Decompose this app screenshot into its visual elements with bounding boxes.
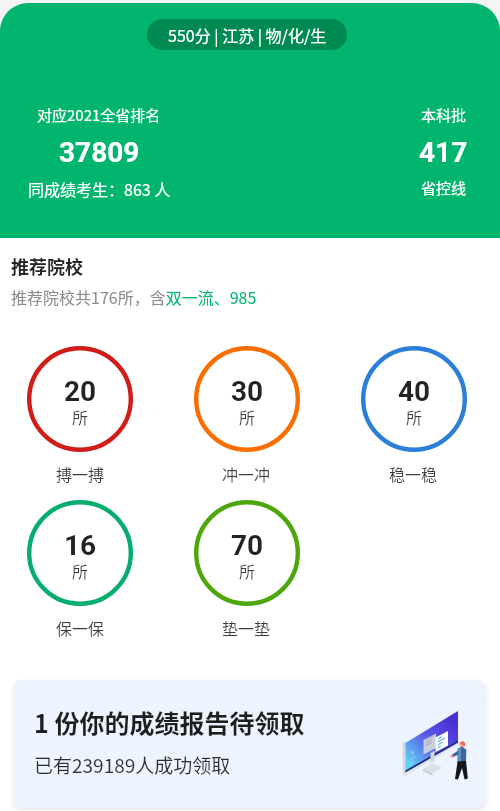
staticText: 省控线 — [421, 177, 467, 199]
staticText: 保一保 — [56, 616, 105, 639]
staticText: 所 — [239, 559, 256, 582]
button[interactable]: 70 — [163, 500, 330, 639]
staticText: 所 — [239, 405, 256, 428]
staticText: 30 — [231, 375, 264, 408]
staticText: 搏一搏 — [56, 462, 105, 485]
button[interactable]: 550分 | 江苏 | 物/化/生 — [147, 19, 347, 50]
staticText: 已有239189人成功领取 — [34, 751, 231, 779]
staticText: 16 — [64, 529, 97, 562]
staticText: 稳一稳 — [389, 462, 438, 485]
staticText: 对应2021全省排名 — [37, 104, 161, 126]
button[interactable]: 1 份你的成绩报告待领取 — [13, 680, 484, 808]
button[interactable]: 30 — [163, 346, 330, 485]
staticText: 推荐院校共176所，含双一流、985 — [11, 285, 257, 308]
staticText: 550分 | 江苏 | 物/化/生 — [168, 23, 327, 46]
button[interactable]: 16 — [0, 500, 163, 639]
staticText: 40 — [398, 375, 431, 408]
staticText: 70 — [231, 529, 264, 562]
staticText: 所 — [72, 559, 89, 582]
staticText: 1 份你的成绩报告待领取 — [34, 704, 305, 740]
staticText: 推荐院校 — [11, 253, 83, 279]
staticText: 所 — [72, 405, 89, 428]
staticText: 冲一冲 — [222, 462, 271, 485]
staticText: 417 — [419, 136, 468, 169]
staticText: 37809 — [59, 136, 140, 169]
other: Report illustration — [400, 708, 470, 784]
staticText: 所 — [406, 405, 423, 428]
staticText: 垫一垫 — [222, 616, 271, 639]
button[interactable]: 40 — [330, 346, 497, 485]
staticText: 本科批 — [421, 104, 467, 126]
staticText: 同成绩考生：863 人 — [28, 177, 171, 200]
staticText: 20 — [64, 375, 97, 408]
button[interactable]: 20 — [0, 346, 163, 485]
